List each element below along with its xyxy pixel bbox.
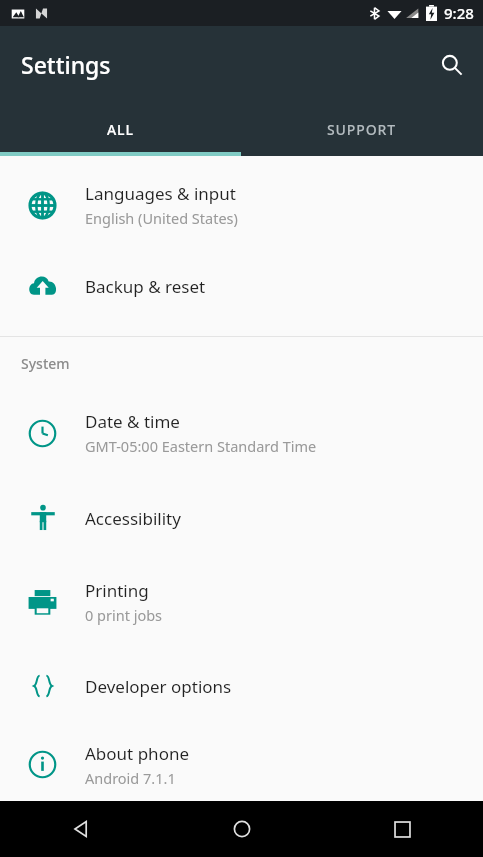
button[interactable]: Accessibility xyxy=(0,476,483,560)
staticText: English (United States) xyxy=(85,208,238,228)
staticText: About phone xyxy=(85,742,190,765)
staticText: Accessibility xyxy=(85,507,181,530)
staticText: 0 print jobs xyxy=(85,605,163,625)
button[interactable]: Developer options xyxy=(0,644,483,728)
staticText: Printing xyxy=(85,579,149,602)
staticText: Developer options xyxy=(85,675,232,698)
staticText: GMT-05:00 Eastern Standard Time xyxy=(85,436,317,456)
button[interactable]: Search xyxy=(428,41,476,89)
staticText: Android 7.1.1 xyxy=(85,768,176,788)
staticText: SUPPORT xyxy=(327,120,397,139)
button[interactable]: Date & time xyxy=(0,390,483,476)
staticText: Backup & reset xyxy=(85,275,206,298)
button[interactable]: SUPPORT xyxy=(241,103,483,156)
staticText: System xyxy=(21,354,70,373)
button[interactable]: Recent apps xyxy=(322,801,483,857)
button[interactable]: Home xyxy=(161,801,322,857)
staticText: Settings xyxy=(21,49,111,80)
staticText: Date & time xyxy=(85,410,180,433)
button[interactable]: Printing xyxy=(0,560,483,644)
staticText: Languages & input xyxy=(85,182,236,205)
button[interactable]: About phone xyxy=(0,728,483,801)
button[interactable]: Back xyxy=(0,801,161,857)
button[interactable]: Backup & reset xyxy=(0,247,483,325)
staticText: 9:28 xyxy=(444,3,474,23)
staticText: ALL xyxy=(107,120,134,139)
button[interactable]: Languages & input xyxy=(0,163,483,247)
button[interactable]: ALL xyxy=(0,103,241,156)
